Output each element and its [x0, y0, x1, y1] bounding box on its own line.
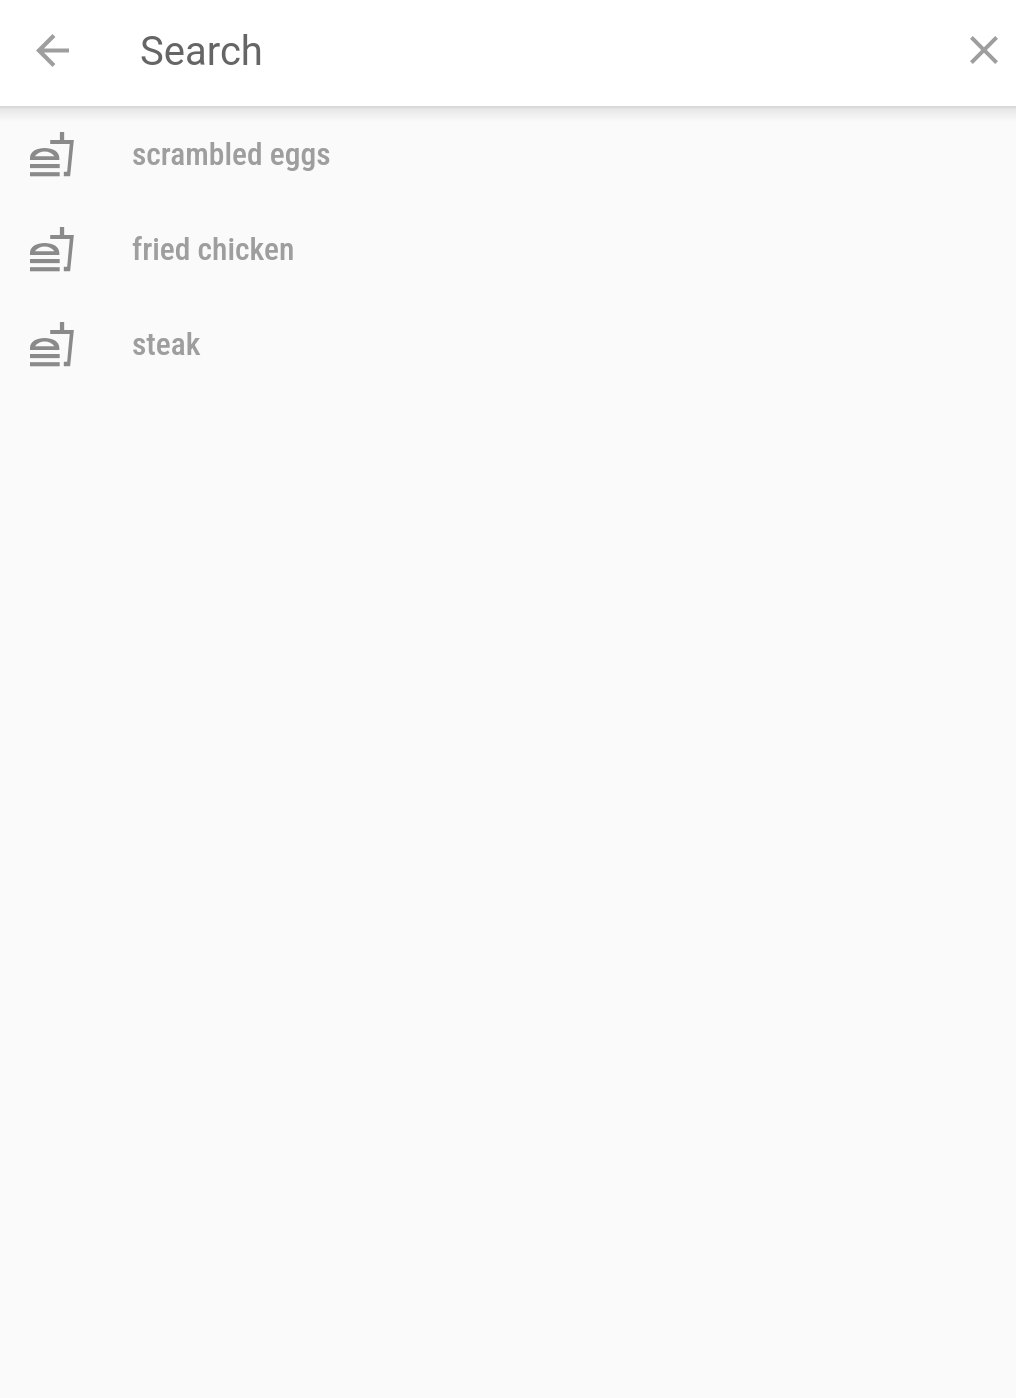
- staticText: scrambled eggs: [132, 136, 331, 173]
- button[interactable]: Clear search: [950, 16, 1016, 84]
- button[interactable]: Back: [8, 6, 96, 94]
- staticText: fried chicken: [132, 231, 295, 268]
- button[interactable]: scrambled eggs: [0, 106, 1016, 201]
- staticText: Search: [140, 28, 263, 75]
- button[interactable]: fried chicken: [0, 201, 1016, 296]
- staticText: steak: [132, 326, 201, 363]
- button[interactable]: steak: [0, 296, 1016, 391]
